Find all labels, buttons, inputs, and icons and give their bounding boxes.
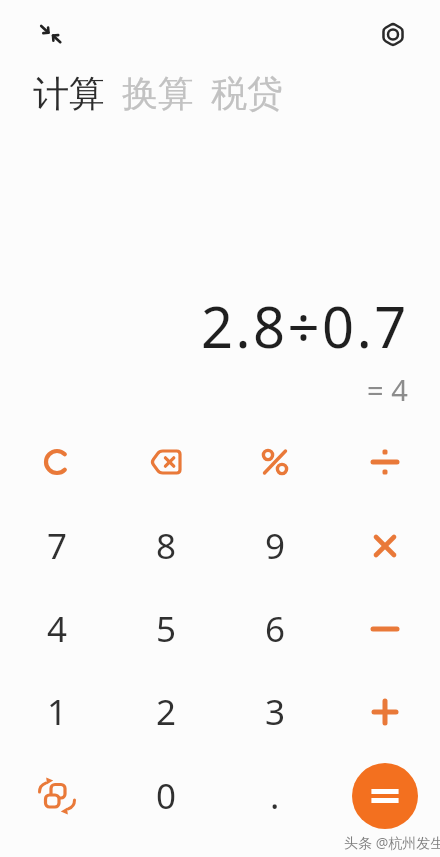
button[interactable] bbox=[352, 763, 418, 829]
button[interactable]: 7 bbox=[17, 506, 97, 586]
button[interactable] bbox=[235, 422, 315, 502]
staticText: 4 bbox=[47, 605, 68, 653]
button[interactable]: 换算 bbox=[122, 71, 194, 116]
button[interactable]: 4 bbox=[17, 589, 97, 669]
button[interactable]: 5 bbox=[126, 589, 206, 669]
button[interactable]: 8 bbox=[126, 506, 206, 586]
button[interactable]: 2 bbox=[126, 672, 206, 752]
staticText: 2 bbox=[156, 688, 177, 736]
staticText: 9 bbox=[265, 522, 286, 570]
staticText: 8 bbox=[156, 522, 177, 570]
button[interactable]: 1 bbox=[17, 672, 97, 752]
staticText: 税贷 bbox=[211, 71, 283, 116]
staticText: 6 bbox=[265, 605, 286, 653]
staticText: 计算 bbox=[33, 71, 105, 116]
staticText: 2.8÷0.7 bbox=[201, 288, 409, 364]
button[interactable] bbox=[345, 589, 425, 669]
button[interactable]: 6 bbox=[235, 589, 315, 669]
staticText: 1 bbox=[47, 688, 68, 736]
button[interactable] bbox=[17, 422, 97, 502]
staticText: . bbox=[270, 772, 280, 820]
button[interactable]: 计算 bbox=[33, 71, 105, 116]
button[interactable] bbox=[345, 422, 425, 502]
staticText: = 4 bbox=[367, 370, 408, 409]
button[interactable]: 0 bbox=[126, 756, 206, 836]
button[interactable] bbox=[126, 422, 206, 502]
staticText: 5 bbox=[156, 605, 177, 653]
button[interactable] bbox=[34, 18, 70, 54]
button[interactable]: 3 bbox=[235, 672, 315, 752]
button[interactable] bbox=[17, 756, 97, 836]
button[interactable] bbox=[345, 672, 425, 752]
button[interactable]: . bbox=[235, 756, 315, 836]
button[interactable]: 税贷 bbox=[211, 71, 283, 116]
button[interactable]: 9 bbox=[235, 506, 315, 586]
staticText: 7 bbox=[47, 522, 68, 570]
staticText: 0 bbox=[156, 772, 177, 820]
staticText: 头条 @杭州发生 bbox=[344, 833, 440, 852]
button[interactable] bbox=[377, 18, 410, 51]
button[interactable] bbox=[345, 506, 425, 586]
staticText: 换算 bbox=[122, 71, 194, 116]
staticText: 3 bbox=[265, 688, 286, 736]
